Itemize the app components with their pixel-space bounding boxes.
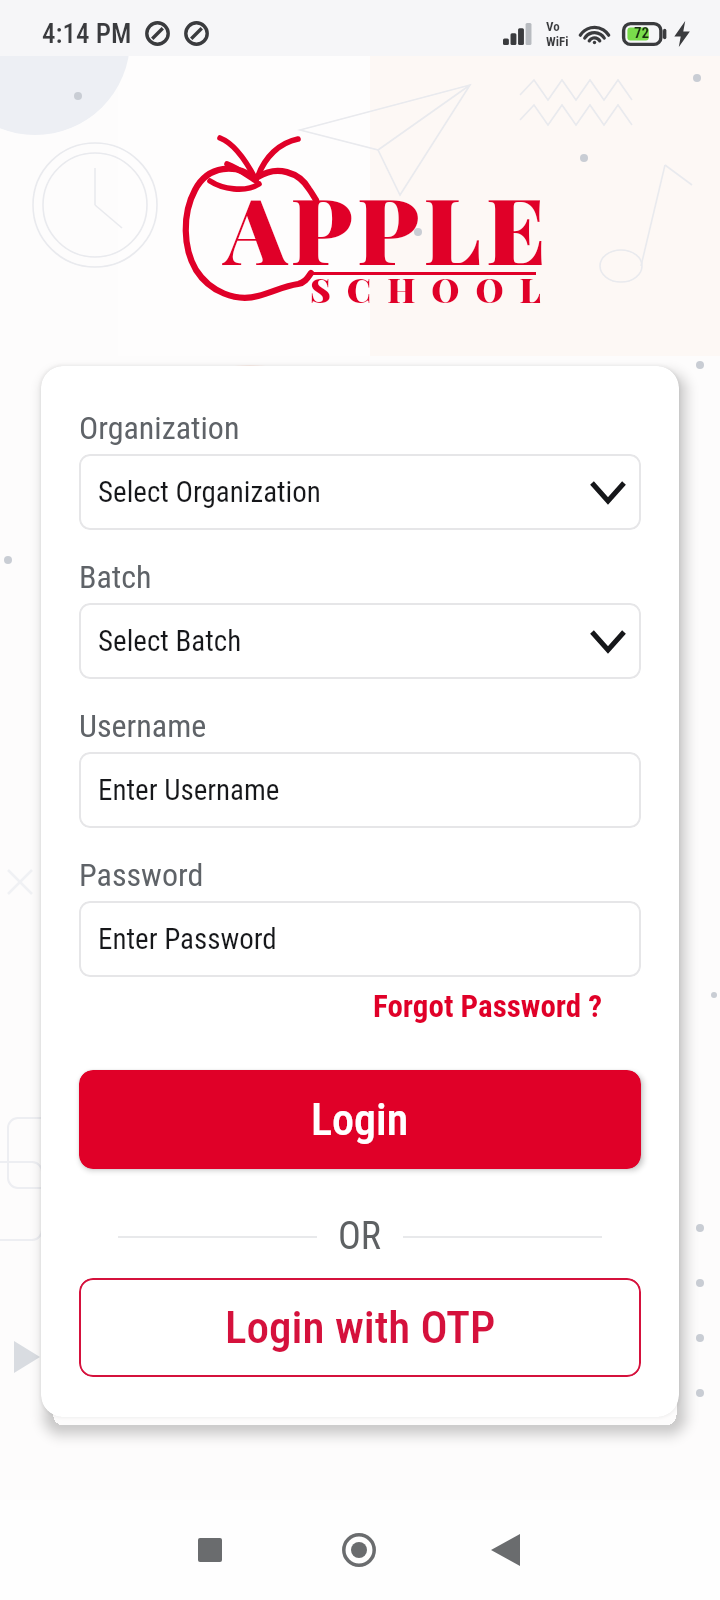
button[interactable]: Enter Username: [79, 752, 641, 828]
button[interactable]: Recent apps: [170, 1510, 250, 1590]
staticText: APPLE: [224, 165, 551, 288]
button[interactable]: Enter Password: [79, 901, 641, 977]
staticText: S C H O O L: [310, 266, 546, 311]
button[interactable]: Forgot Password ?: [373, 988, 603, 1024]
staticText: Select Organization: [98, 475, 321, 509]
button[interactable]: Login: [79, 1070, 641, 1169]
staticText: Vo: [546, 19, 560, 34]
button[interactable]: Back: [465, 1510, 545, 1590]
staticText: Login with OTP: [225, 1301, 496, 1354]
staticText: Batch: [79, 558, 152, 596]
button[interactable]: Select Organization: [79, 454, 641, 530]
button[interactable]: Select Batch: [79, 603, 641, 679]
staticText: WiFi: [546, 34, 569, 49]
staticText: OR: [338, 1214, 382, 1259]
staticText: Enter Password: [98, 922, 277, 956]
button[interactable]: Home: [319, 1510, 399, 1590]
staticText: Select Batch: [98, 624, 242, 658]
staticText: Username: [79, 707, 207, 745]
staticText: 72: [634, 24, 650, 42]
staticText: 4:14 PM: [42, 18, 132, 50]
staticText: Login: [311, 1094, 409, 1146]
staticText: Password: [79, 856, 204, 894]
staticText: Organization: [79, 409, 240, 447]
staticText: Enter Username: [98, 773, 280, 807]
button[interactable]: Login with OTP: [79, 1278, 641, 1377]
